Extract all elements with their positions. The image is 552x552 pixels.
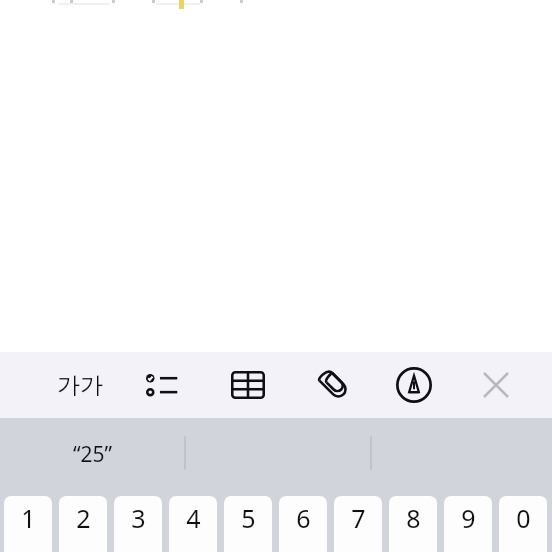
staticText: 가가	[57, 371, 103, 400]
staticText: 5	[241, 501, 256, 535]
button[interactable]: Close	[470, 359, 522, 411]
staticText: 0	[516, 501, 531, 535]
staticText: 7	[351, 501, 366, 535]
button[interactable]: 6	[279, 496, 327, 552]
staticText: “25”	[73, 440, 113, 469]
staticText: 9	[461, 501, 476, 535]
button[interactable]: 가가	[48, 360, 112, 410]
button[interactable]: Checklist	[136, 359, 188, 411]
staticText: 4	[186, 501, 201, 535]
button[interactable]: 0	[499, 496, 547, 552]
staticText: 1	[21, 501, 36, 535]
staticText: 8	[406, 501, 421, 535]
button[interactable]: “25”	[0, 418, 185, 490]
staticText: 6	[296, 501, 311, 535]
button[interactable]: Markup	[388, 359, 440, 411]
button[interactable]: 5	[224, 496, 272, 552]
button[interactable]: 9	[444, 496, 492, 552]
button[interactable]: Insert table	[222, 359, 274, 411]
button[interactable]: Attach file	[308, 359, 360, 411]
button[interactable]: 8	[389, 496, 437, 552]
button[interactable]: 2	[59, 496, 107, 552]
button[interactable]: 4	[169, 496, 217, 552]
staticText: 3	[131, 501, 146, 535]
button[interactable]: 3	[114, 496, 162, 552]
button[interactable]: 7	[334, 496, 382, 552]
button[interactable]: 1	[4, 496, 52, 552]
staticText: 2	[76, 501, 91, 535]
